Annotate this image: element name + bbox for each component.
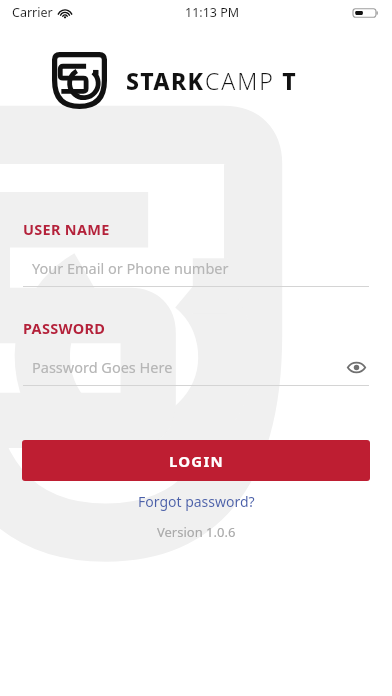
button[interactable]: LOGIN [22,440,370,481]
staticText: CAMP [205,65,275,96]
staticText: PASSWORD [23,318,106,338]
staticText: 11:13 PM [185,4,240,21]
staticText: Your Email or Phone number [32,258,229,278]
staticText: Version 1.0.6 [157,523,236,541]
button[interactable]: Forgot password? [0,492,392,511]
staticText: Forgot password? [138,492,255,511]
staticText: STARK [126,65,205,96]
staticText: USER NAME [23,219,110,239]
staticText: T [275,65,298,96]
staticText: LOGIN [169,451,224,471]
staticText: Carrier [12,4,53,21]
staticText: Password Goes Here [32,357,173,377]
button[interactable]: Show password [343,356,369,378]
